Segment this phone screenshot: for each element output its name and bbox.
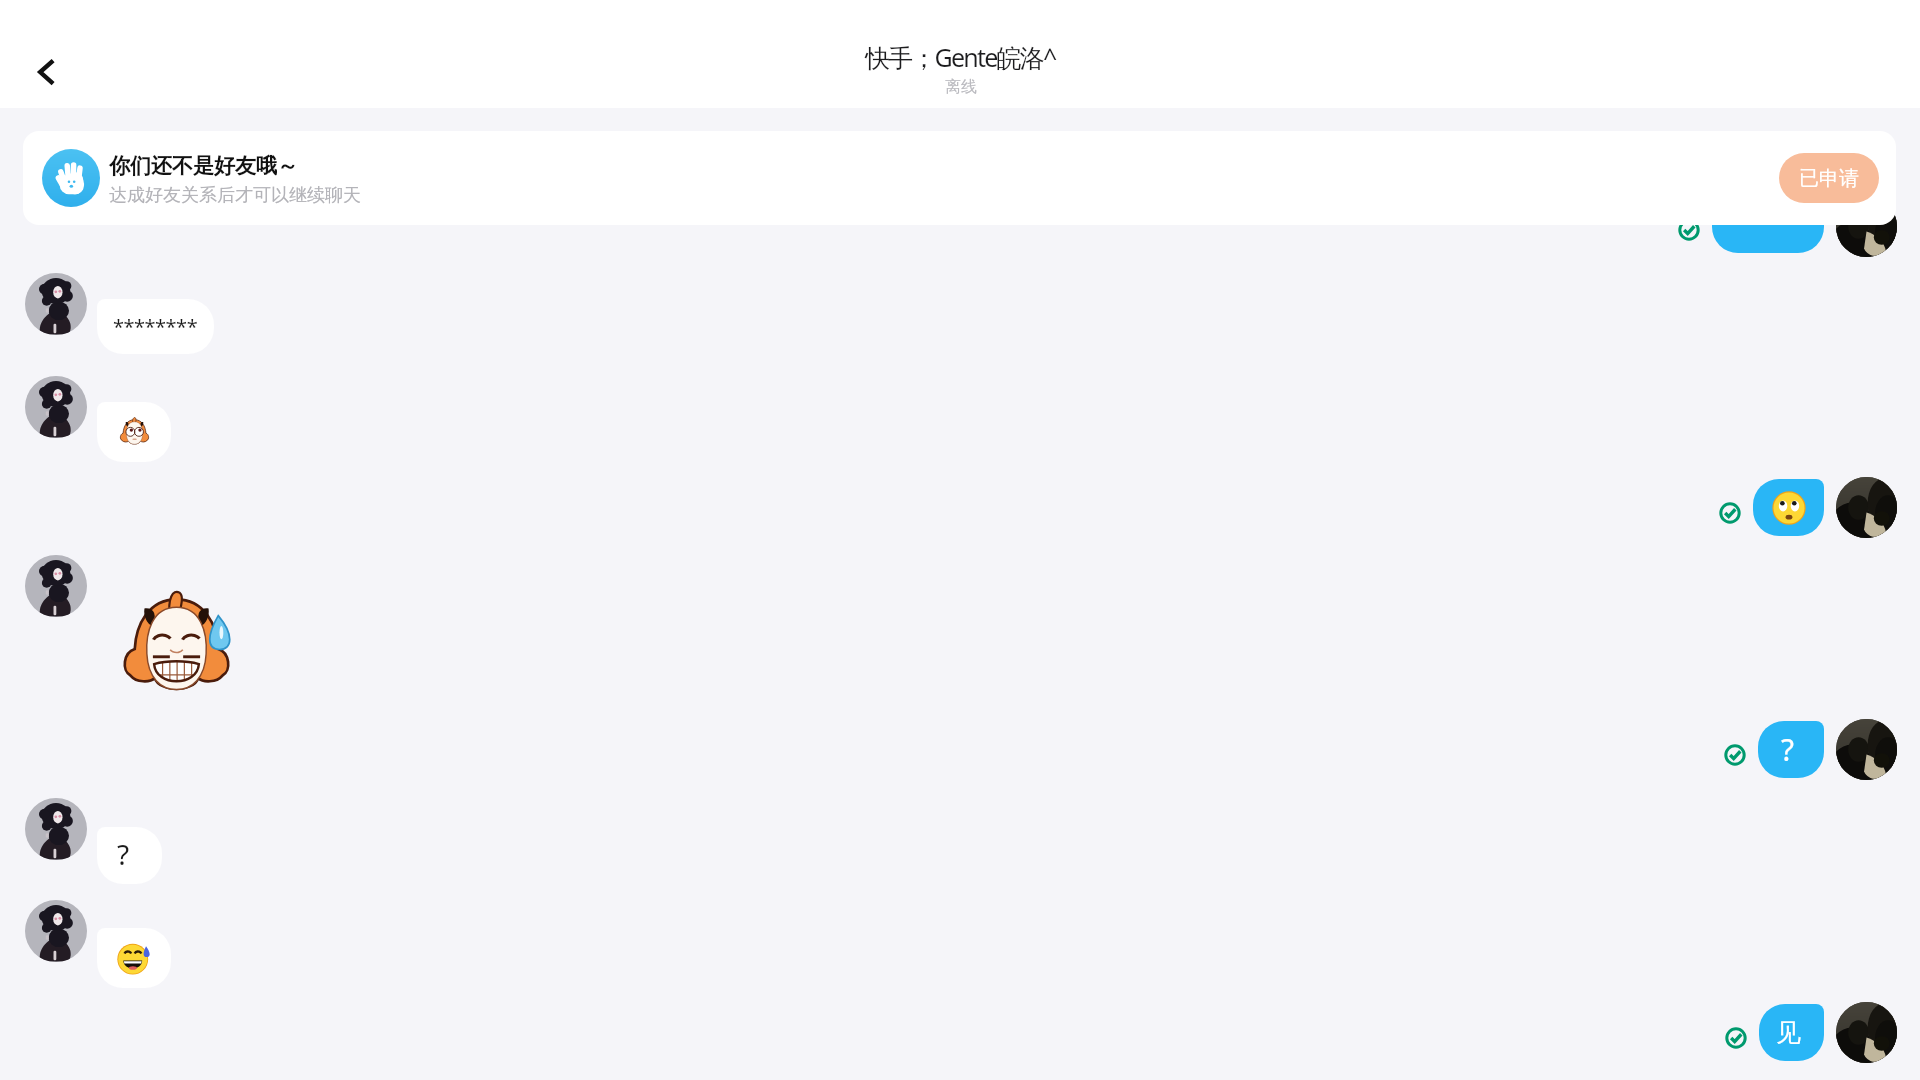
other: Sent bbox=[1724, 744, 1746, 766]
button[interactable]: Contact avatar bbox=[25, 900, 87, 962]
button[interactable]: Sticker bbox=[116, 586, 237, 707]
button[interactable]: ? bbox=[1758, 721, 1824, 778]
staticText: ? bbox=[117, 835, 130, 873]
button[interactable] bbox=[1712, 196, 1824, 253]
staticText: 达成好友关系后才可以继续聊天 bbox=[109, 184, 361, 207]
staticText: ******** bbox=[113, 313, 198, 340]
button[interactable] bbox=[97, 928, 171, 988]
staticText: 快手；Gente皖洛^ bbox=[865, 40, 1056, 74]
staticText: 已申请 bbox=[1799, 166, 1859, 191]
button[interactable]: 见 bbox=[1759, 1004, 1824, 1061]
button[interactable]: My avatar bbox=[1836, 719, 1897, 780]
button[interactable]: Contact avatar bbox=[25, 376, 87, 438]
button[interactable]: ? bbox=[97, 827, 162, 884]
button[interactable]: Back bbox=[19, 41, 74, 96]
button[interactable]: Contact avatar bbox=[25, 273, 87, 335]
staticText: 见 bbox=[1776, 1017, 1801, 1048]
other: Sent bbox=[1719, 502, 1741, 524]
button[interactable]: My avatar bbox=[1836, 196, 1897, 257]
button[interactable]: ******** bbox=[97, 299, 214, 354]
staticText: ? bbox=[1781, 729, 1795, 770]
button[interactable]: Contact avatar bbox=[25, 798, 87, 860]
button[interactable]: My avatar bbox=[1836, 477, 1897, 538]
button[interactable]: Contact avatar bbox=[25, 555, 87, 617]
staticText: 离线 bbox=[945, 77, 977, 97]
button[interactable] bbox=[1753, 479, 1824, 536]
other: Sent bbox=[1725, 1027, 1747, 1049]
staticText: 你们还不是好友哦～ bbox=[109, 153, 298, 179]
button[interactable] bbox=[97, 402, 171, 462]
button[interactable]: My avatar bbox=[1836, 1002, 1897, 1063]
other: Sent bbox=[1678, 219, 1700, 241]
button[interactable]: 已申请 bbox=[1779, 153, 1879, 203]
